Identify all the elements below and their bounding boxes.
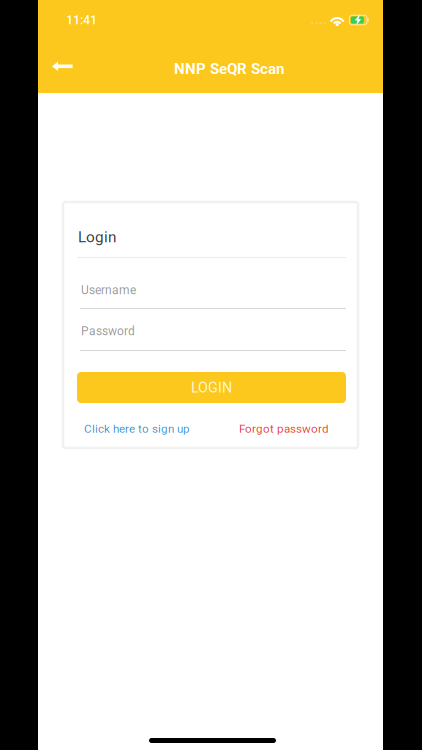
staticText: Password [81, 324, 135, 338]
button[interactable]: Back [52, 61, 73, 71]
button[interactable]: Forgot password [239, 422, 329, 436]
staticText: Click here to sign up [84, 422, 190, 436]
button[interactable]: Click here to sign up [84, 422, 190, 436]
staticText: Forgot password [239, 422, 329, 436]
button[interactable]: LOGIN [77, 372, 346, 403]
staticText: Login [78, 228, 116, 246]
staticText: 11:41 [66, 13, 97, 27]
staticText: NNP SeQR Scan [174, 60, 284, 78]
staticText: LOGIN [191, 379, 232, 396]
staticText: Username [81, 283, 136, 297]
